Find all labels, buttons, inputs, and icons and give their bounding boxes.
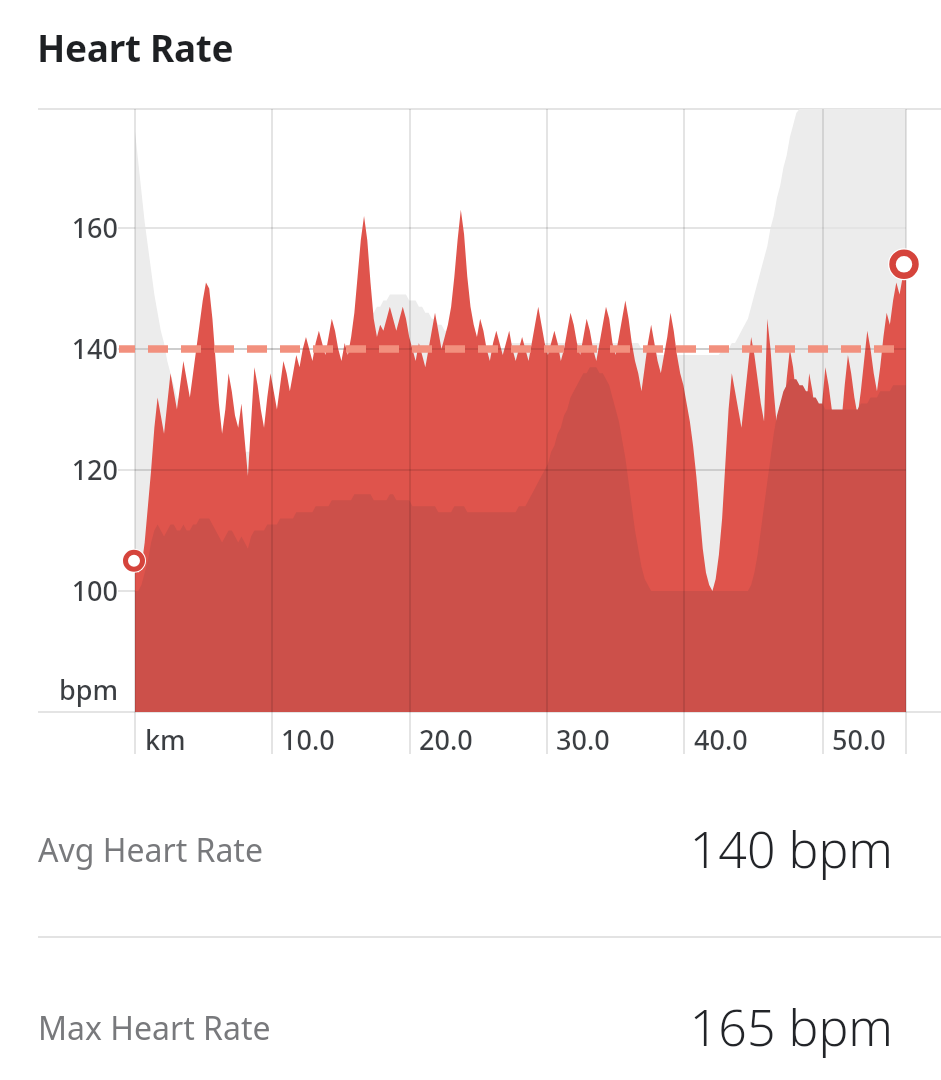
staticText: 30.0	[556, 721, 610, 758]
staticText: Heart Rate	[37, 22, 234, 72]
staticText: bpm	[0, 671, 118, 708]
staticText: 20.0	[419, 721, 473, 758]
staticText: 120	[0, 451, 118, 488]
staticText: 140 bpm	[0, 815, 893, 883]
staticText: Max Heart Rate	[38, 1006, 271, 1050]
staticText: Avg Heart Rate	[38, 828, 263, 872]
staticText: 100	[0, 572, 118, 609]
staticText: 165 bpm	[0, 993, 893, 1061]
staticText: 140	[0, 330, 118, 367]
staticText: 50.0	[832, 721, 886, 758]
staticText: km	[145, 721, 186, 758]
staticText: 10.0	[281, 721, 335, 758]
button[interactable]: Avg Heart Rate	[0, 790, 941, 1080]
staticText: 40.0	[694, 721, 748, 758]
staticText: 160	[0, 209, 118, 246]
button[interactable]: Max Heart Rate	[0, 968, 941, 1080]
